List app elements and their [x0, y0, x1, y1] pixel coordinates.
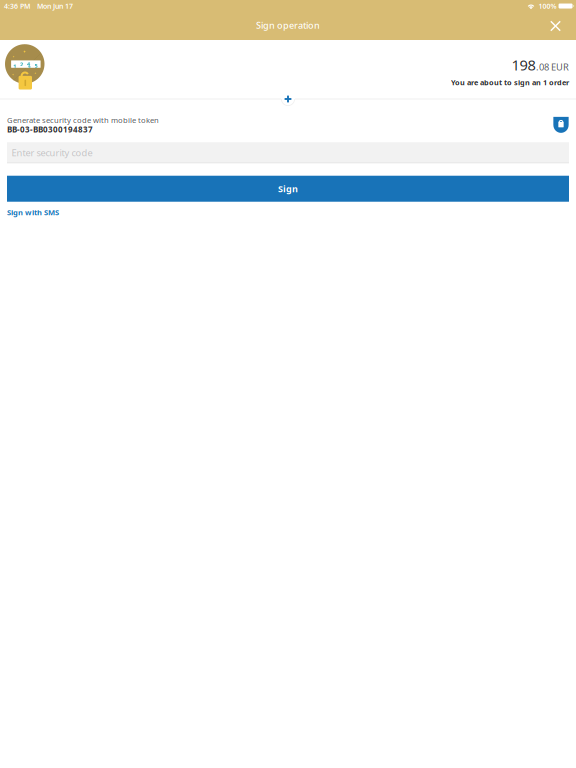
staticText: Mon Jun 17 [37, 1, 73, 11]
staticText: Sign operation [256, 19, 320, 31]
staticText: 2 [20, 61, 23, 68]
button[interactable]: Sign [7, 176, 569, 202]
staticText: 198 [511, 55, 535, 75]
button[interactable]: Mobile token [553, 116, 569, 133]
button[interactable]: Enter security code [7, 142, 569, 163]
staticText: 4 [27, 60, 30, 68]
staticText: Sign with SMS [7, 207, 59, 217]
staticText: BB-03-BB0300194837 [7, 124, 93, 135]
staticText: You are about to sign an 1 order [451, 78, 569, 87]
button[interactable]: Sign with SMS [0, 204, 576, 220]
staticText: Generate security code with mobile token [7, 115, 159, 125]
staticText: 3 [28, 64, 31, 72]
button[interactable]: Close [543, 14, 567, 38]
staticText: 5 [34, 62, 37, 69]
staticText: 100% [538, 1, 556, 11]
staticText: .08 EUR [536, 61, 569, 73]
staticText: Sign [278, 183, 298, 195]
staticText: 1 [13, 63, 16, 70]
staticText: Enter security code [11, 146, 92, 159]
staticText: 4:36 PM [4, 1, 30, 11]
